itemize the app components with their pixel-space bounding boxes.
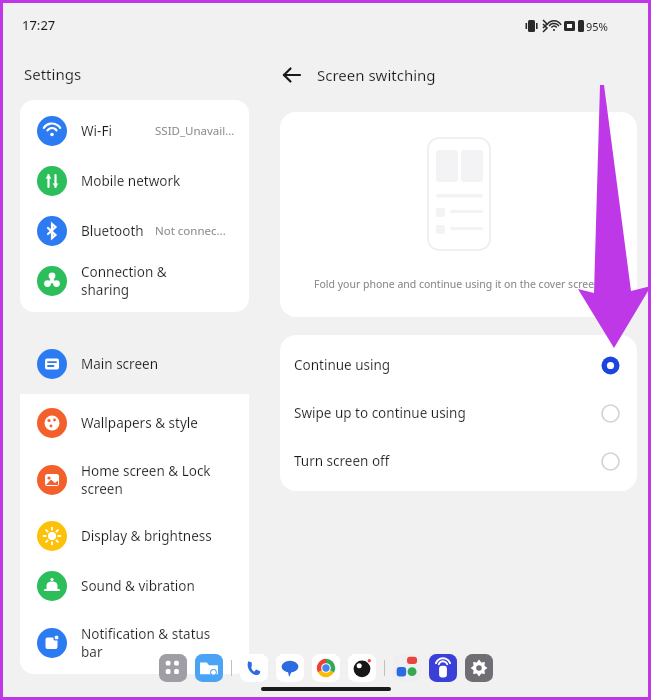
button[interactable]: Bluetooth xyxy=(20,206,249,256)
button[interactable]: grid xyxy=(159,654,187,682)
staticText: Notification & status bar xyxy=(81,625,216,661)
other: Back xyxy=(280,63,304,87)
button[interactable]: Main screen xyxy=(20,334,249,394)
button[interactable]: Wi-Fi xyxy=(20,106,249,156)
staticText: Screen switching xyxy=(317,65,436,85)
staticText: 95% xyxy=(586,19,608,34)
button[interactable]: vpn xyxy=(429,654,457,682)
staticText: Connection & sharing xyxy=(81,263,216,299)
button[interactable]: Sound & vibration xyxy=(20,561,249,611)
staticText: Swipe up to continue using xyxy=(294,404,601,422)
button[interactable]: chrome xyxy=(312,654,340,682)
staticText: Settings xyxy=(24,64,82,84)
staticText: Home screen & Lock screen xyxy=(81,462,216,498)
staticText: Turn screen off xyxy=(294,452,601,470)
staticText: Continue using xyxy=(294,356,601,374)
button[interactable]: Back xyxy=(280,60,436,90)
staticText: SSID_Unavailable xyxy=(155,123,239,139)
button[interactable]: msg xyxy=(276,654,304,682)
staticText: 17:27 xyxy=(22,16,56,34)
button[interactable]: Turn screen off xyxy=(280,437,637,485)
button[interactable]: Connection & sharing xyxy=(20,256,249,306)
staticText: Mobile network xyxy=(81,172,216,190)
button[interactable]: Home screen & Lock screen xyxy=(20,448,249,511)
button[interactable]: settings xyxy=(465,654,493,682)
button[interactable]: phone xyxy=(240,654,268,682)
button[interactable]: Notification & status bar xyxy=(20,611,249,674)
button[interactable]: Continue using xyxy=(280,341,637,389)
staticText: Wallpapers & style xyxy=(81,414,216,432)
staticText: Not connec... xyxy=(155,223,226,239)
staticText: Bluetooth xyxy=(81,222,151,240)
staticText: Display & brightness xyxy=(81,527,216,545)
staticText: Wi-Fi xyxy=(81,122,151,140)
button[interactable]: Swipe up to continue using xyxy=(280,389,637,437)
button[interactable]: cam xyxy=(348,654,376,682)
button[interactable]: files xyxy=(195,654,223,682)
staticText: Main screen xyxy=(81,355,158,373)
button[interactable]: Wallpapers & style xyxy=(20,398,249,448)
button[interactable]: Display & brightness xyxy=(20,511,249,561)
button[interactable]: Mobile network xyxy=(20,156,249,206)
button[interactable]: folder xyxy=(393,654,421,682)
staticText: Sound & vibration xyxy=(81,577,216,595)
staticText: Fold your phone and continue using it on… xyxy=(314,277,604,291)
